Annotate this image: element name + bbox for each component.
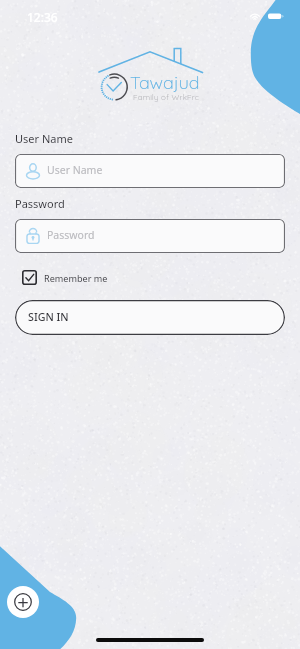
staticText: Remember me [44, 272, 108, 284]
staticText: Password [47, 228, 95, 242]
staticText: SIGN IN [28, 310, 69, 325]
button[interactable]: Add [7, 586, 39, 618]
button[interactable]: Remember me [22, 270, 108, 285]
staticText: User Name [47, 163, 103, 177]
button[interactable]: SIGN IN [15, 300, 285, 335]
staticText: Family of WrkFrc [133, 92, 200, 102]
staticText: 12:36 [27, 9, 58, 25]
staticText: User Name [15, 131, 73, 146]
button[interactable]: Password [15, 219, 285, 253]
staticText: Tawajud [130, 71, 200, 94]
button[interactable]: User Name [15, 154, 285, 188]
staticText: Password [15, 196, 65, 211]
